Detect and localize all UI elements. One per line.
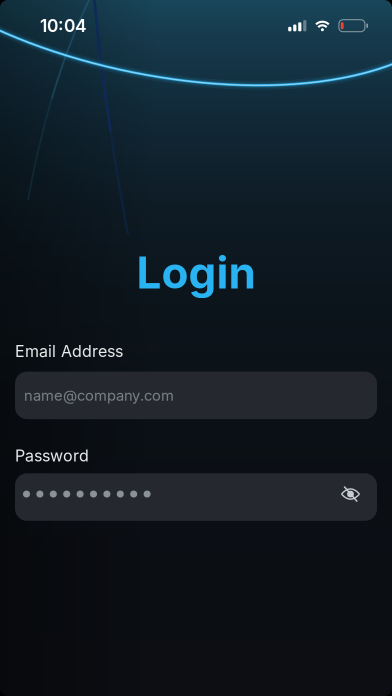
button[interactable]: Show password: [341, 490, 377, 504]
staticText: Password: [15, 446, 89, 465]
staticText: 10:04: [40, 15, 87, 36]
button[interactable]: name@company.com: [15, 372, 377, 419]
staticText: name@company.com: [24, 387, 174, 404]
staticText: Login: [136, 246, 255, 298]
button[interactable]: [15, 473, 377, 521]
staticText: Email Address: [15, 342, 123, 361]
